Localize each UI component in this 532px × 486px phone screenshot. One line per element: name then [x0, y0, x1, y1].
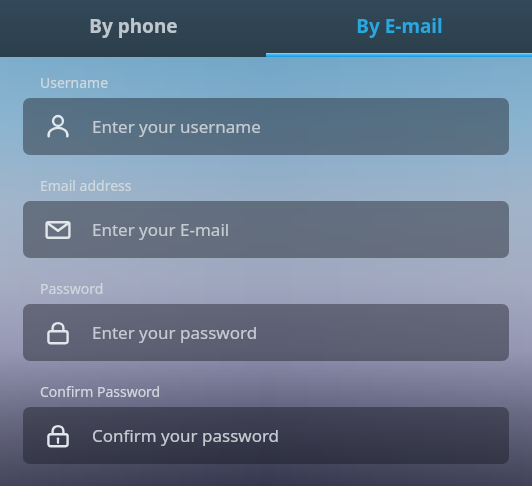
- staticText: Password: [40, 279, 104, 298]
- button[interactable]: Confirm your password: [23, 407, 509, 464]
- staticText: By phone: [89, 13, 178, 39]
- staticText: Confirm your password: [92, 424, 280, 447]
- staticText: Enter your password: [92, 321, 258, 344]
- staticText: Confirm Password: [40, 382, 161, 401]
- staticText: Username: [40, 73, 109, 92]
- button[interactable]: Enter your E-mail: [23, 201, 509, 258]
- button[interactable]: By E-mail: [266, 0, 532, 57]
- staticText: By E-mail: [356, 13, 443, 39]
- staticText: Email address: [40, 176, 132, 195]
- staticText: Enter your username: [92, 115, 261, 138]
- staticText: Enter your E-mail: [92, 218, 230, 241]
- button[interactable]: By phone: [0, 0, 266, 57]
- button[interactable]: Enter your password: [23, 304, 509, 361]
- button[interactable]: Enter your username: [23, 98, 509, 155]
